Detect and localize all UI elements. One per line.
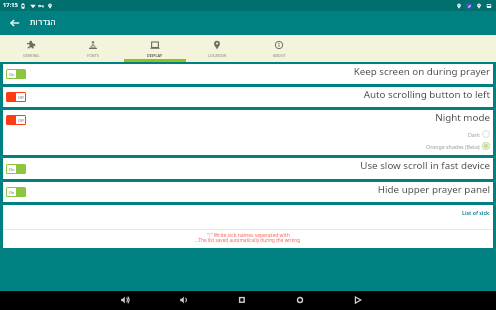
staticText: On	[9, 190, 15, 195]
button[interactable]: Volume down	[174, 290, 194, 309]
staticText: ABOUT	[273, 53, 286, 58]
staticText: FONTS	[87, 53, 99, 58]
button[interactable]: Off	[6, 92, 26, 102]
button[interactable]: On	[6, 164, 26, 174]
staticText: Off	[18, 95, 24, 100]
staticText: Dark	[468, 131, 480, 138]
button[interactable]: On	[3, 182, 493, 202]
staticText: Hide upper prayer panel	[30, 183, 490, 196]
staticText: Auto scrolling button to left	[30, 88, 490, 101]
staticText: הגדרות	[30, 17, 56, 27]
button[interactable]: LOCATION	[186, 35, 248, 62]
button[interactable]: ABOUT	[248, 35, 310, 62]
button[interactable]: Orange shades (Beta)	[3, 140, 493, 152]
button[interactable]: Off	[6, 115, 26, 125]
button[interactable]: Dark	[3, 128, 493, 140]
staticText: Keep screen on during prayer	[30, 65, 490, 78]
staticText: LOCATION	[208, 53, 227, 58]
button[interactable]: GENERAL	[0, 35, 62, 62]
button[interactable]: On	[6, 187, 26, 197]
staticText: GENERAL	[23, 53, 40, 58]
staticText: Off	[18, 118, 24, 123]
staticText: ...The list saved automatically during t…	[195, 237, 301, 243]
button[interactable]: DISPLAY	[124, 35, 186, 62]
staticText: List of sick	[462, 209, 490, 216]
button[interactable]: Home	[290, 290, 310, 309]
staticText: On	[9, 72, 15, 77]
button[interactable]: Off	[3, 87, 493, 107]
button[interactable]: Recents	[232, 290, 252, 309]
staticText: 17:15	[3, 1, 18, 9]
button[interactable]: Back	[7, 15, 23, 31]
button[interactable]: Play	[348, 290, 368, 309]
button[interactable]: List of sick	[3, 205, 493, 229]
staticText: Night mode	[26, 111, 490, 124]
staticText: On	[9, 167, 15, 172]
button[interactable]: Off	[3, 110, 493, 130]
staticText: Use slow scroll in fast device	[30, 159, 490, 172]
button[interactable]: FONTS	[62, 35, 124, 62]
staticText: ";" Write sick names seperated with	[207, 232, 290, 239]
button[interactable]: On	[6, 69, 26, 79]
staticText: DISPLAY	[147, 53, 163, 58]
button[interactable]: On	[3, 158, 493, 179]
button[interactable]: On	[3, 64, 493, 84]
staticText: Orange shades (Beta)	[426, 143, 480, 150]
button[interactable]: Volume up	[115, 290, 135, 309]
